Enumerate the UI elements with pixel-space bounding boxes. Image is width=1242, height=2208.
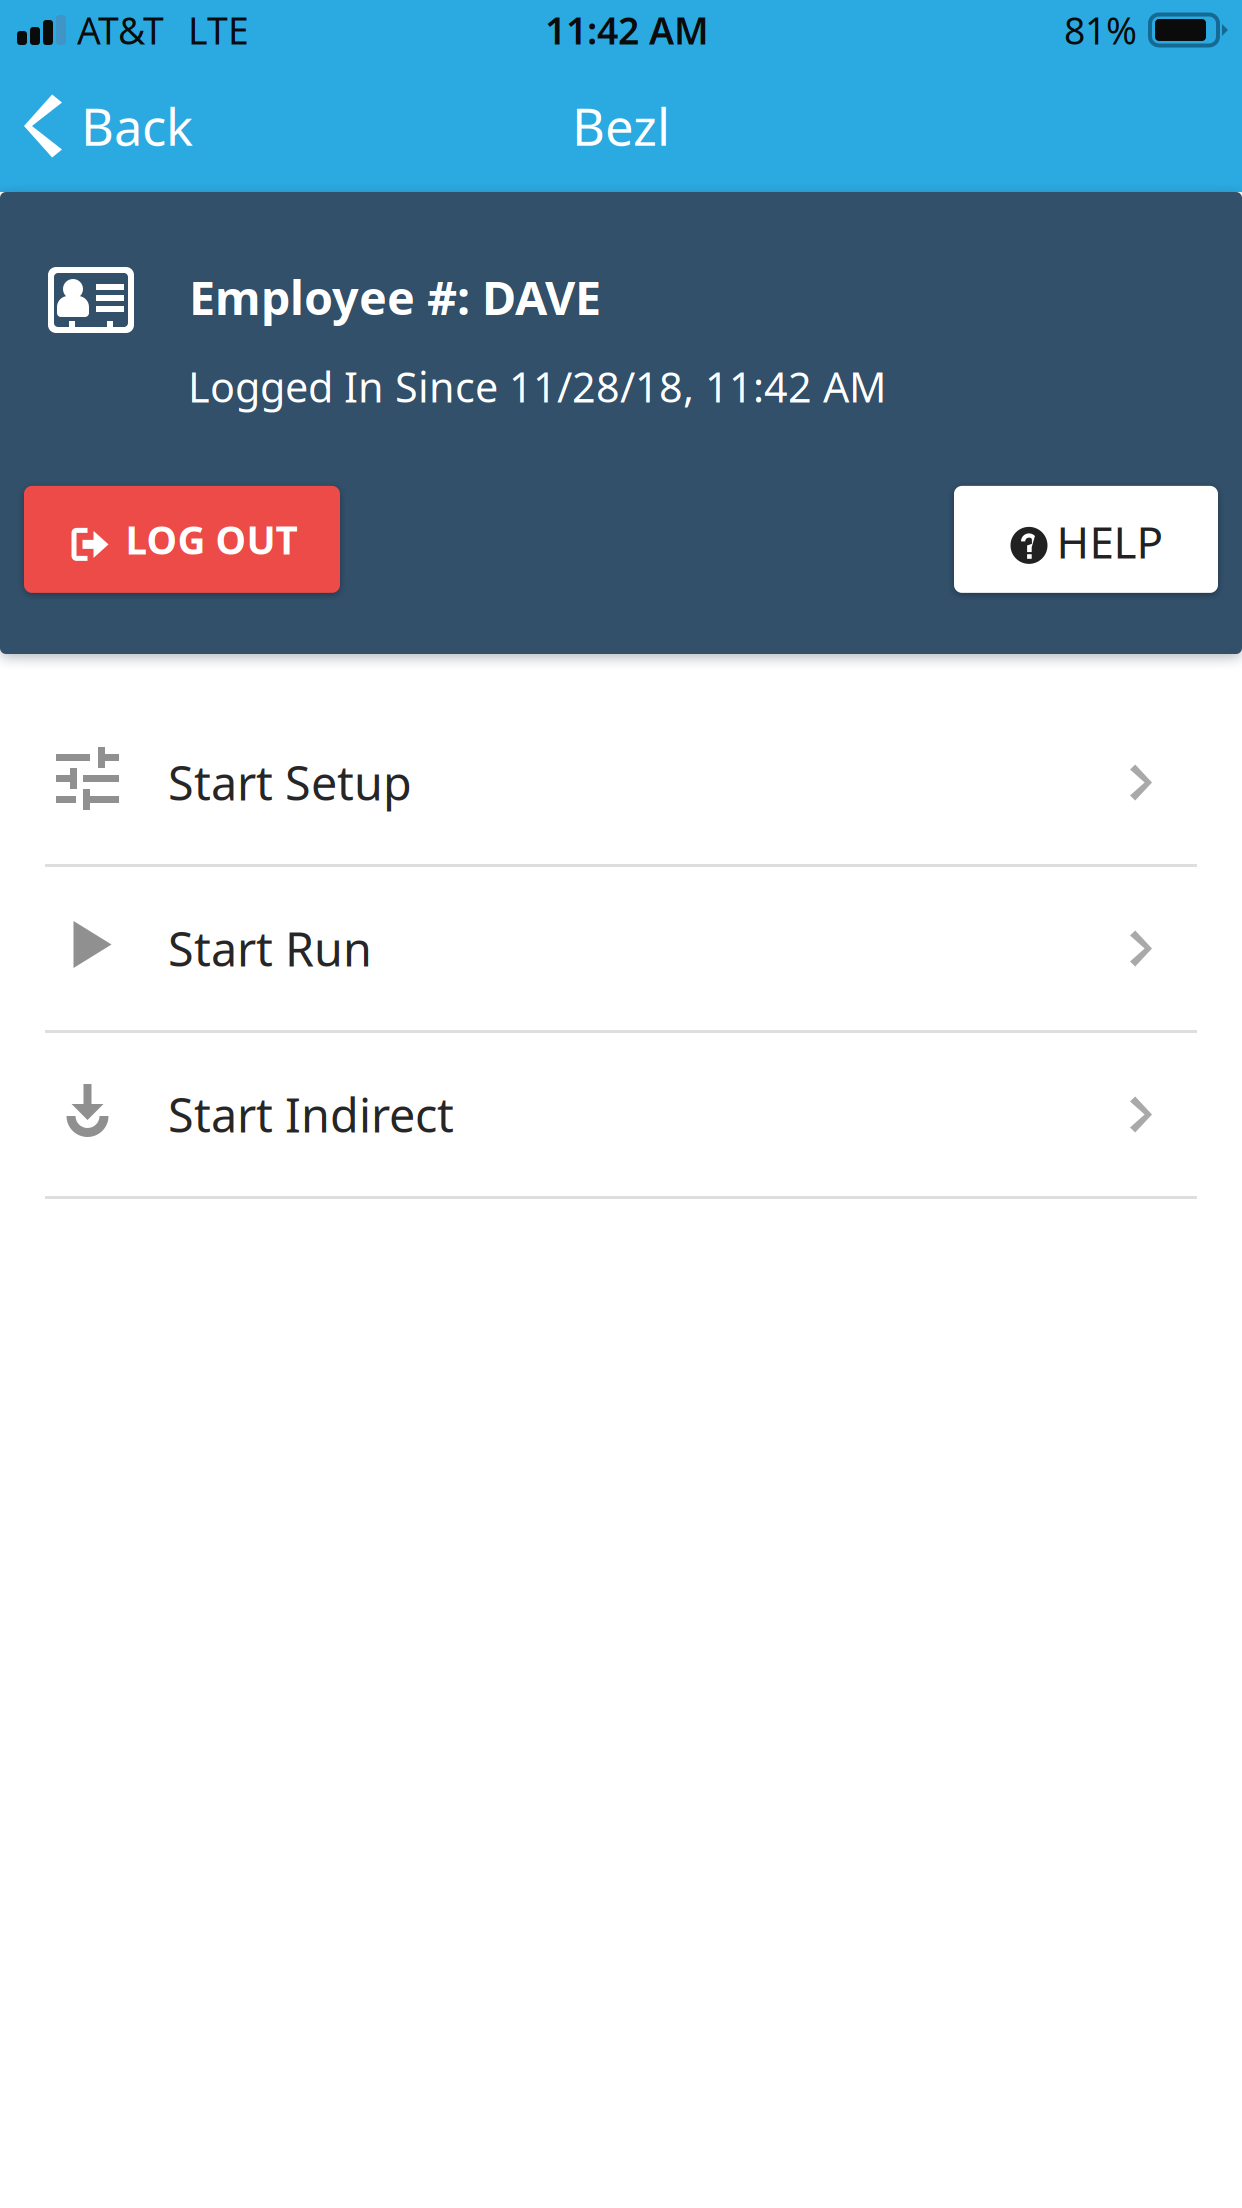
button[interactable]: LOG OUT (24, 486, 340, 593)
staticText: Employee #: DAVE (189, 266, 601, 328)
staticText: 81% (1064, 5, 1137, 55)
staticText: Start Indirect (168, 1083, 454, 1145)
staticText: HELP (1056, 512, 1163, 571)
staticText: LTE (188, 5, 249, 55)
button[interactable]: Start Indirect (0, 1033, 1242, 1196)
button[interactable]: Back (0, 60, 213, 192)
staticText: Start Run (168, 917, 372, 979)
staticText: AT&T (77, 5, 164, 55)
staticText: 11:42 AM (545, 5, 709, 55)
staticText: Start Setup (168, 751, 412, 813)
staticText: Logged In Since 11/28/18, 11:42 AM (188, 359, 886, 414)
staticText: Bezl (572, 92, 670, 160)
button[interactable]: HELP (954, 486, 1218, 593)
staticText: Back (81, 92, 193, 160)
staticText: LOG OUT (125, 514, 297, 565)
button[interactable]: Start Setup (0, 701, 1242, 864)
button[interactable]: Start Run (0, 867, 1242, 1030)
